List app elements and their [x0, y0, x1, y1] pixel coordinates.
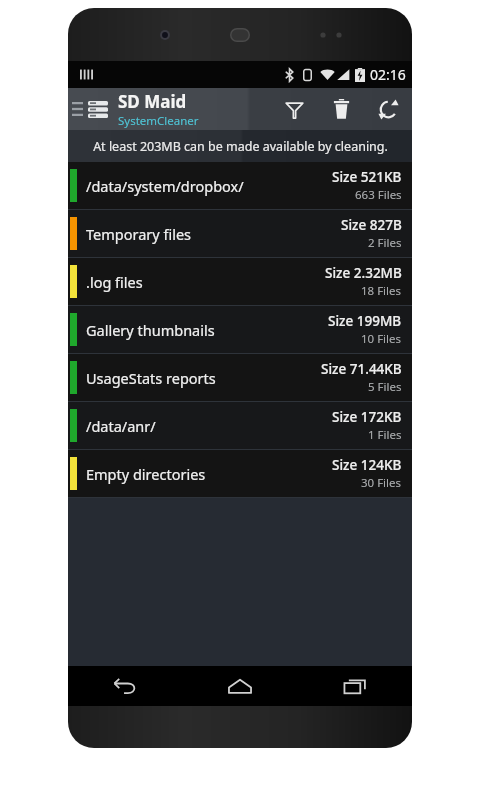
staticText: Size 2.32MB: [325, 264, 402, 282]
staticText: /data/anr/: [86, 416, 332, 436]
staticText: At least 203MB can be made available by …: [93, 138, 388, 155]
staticText: Gallery thumbnails: [86, 320, 328, 340]
staticText: SD Maid: [118, 90, 187, 113]
staticText: Size 521KB: [332, 168, 402, 186]
staticText: 10 Files: [361, 331, 402, 347]
button[interactable]: Home: [182, 666, 297, 706]
staticText: Size 199MB: [328, 312, 402, 330]
button[interactable]: Refresh: [365, 88, 412, 130]
staticText: 30 Files: [361, 475, 402, 491]
button[interactable]: Temporary files: [68, 210, 412, 257]
staticText: Size 172KB: [332, 408, 402, 426]
staticText: 663 Files: [355, 187, 402, 203]
staticText: UsageStats reports: [86, 368, 321, 388]
staticText: Temporary files: [86, 224, 341, 244]
button[interactable]: Gallery thumbnails: [68, 306, 412, 353]
button[interactable]: .log files: [68, 258, 412, 305]
staticText: Empty directories: [86, 464, 332, 484]
staticText: 02:16: [370, 65, 406, 84]
button[interactable]: /data/system/dropbox/: [68, 162, 412, 209]
staticText: Size 71.44KB: [321, 360, 402, 378]
staticText: SystemCleaner: [118, 113, 199, 129]
staticText: 18 Files: [361, 283, 402, 299]
button[interactable]: Delete: [318, 88, 365, 130]
staticText: .log files: [86, 272, 325, 292]
button[interactable]: SD Maid: [118, 90, 271, 129]
staticText: 1 Files: [368, 427, 402, 443]
button[interactable]: UsageStats reports: [68, 354, 412, 401]
staticText: Size 124KB: [332, 456, 402, 474]
staticText: Size 827B: [341, 216, 402, 234]
button[interactable]: Empty directories: [68, 450, 412, 497]
button[interactable]: Back: [68, 666, 182, 706]
button[interactable]: Navigate up: [68, 88, 110, 130]
button[interactable]: Filter: [271, 88, 318, 130]
button[interactable]: Recent apps: [297, 666, 412, 706]
staticText: /data/system/dropbox/: [86, 176, 332, 196]
button[interactable]: /data/anr/: [68, 402, 412, 449]
staticText: 2 Files: [368, 235, 402, 251]
staticText: 5 Files: [368, 379, 402, 395]
